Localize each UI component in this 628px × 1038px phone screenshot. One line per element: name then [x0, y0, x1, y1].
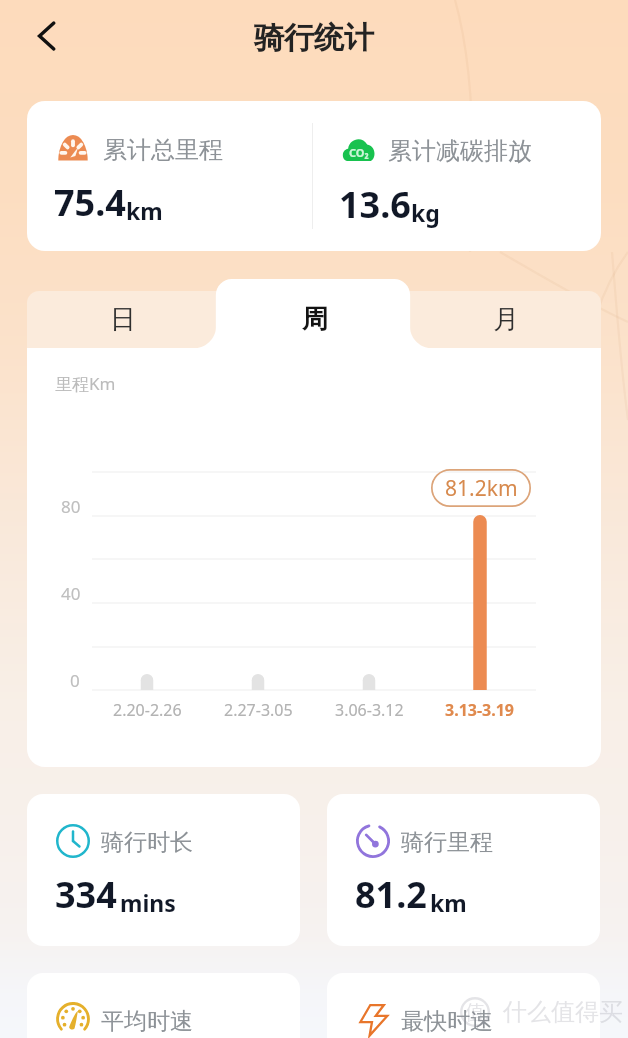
staticText: 81.2km [445, 474, 518, 503]
staticText: 80 [61, 495, 81, 518]
staticText: 骑行统计 [254, 19, 374, 57]
button[interactable]: 骑行时长 [27, 794, 300, 946]
button[interactable]: 周 [219, 291, 410, 348]
button[interactable]: Back [24, 13, 70, 59]
staticText: 什么值得买 [503, 997, 623, 1027]
staticText: 累计总里程 [103, 135, 223, 165]
staticText: 骑行里程 [401, 828, 493, 857]
staticText: 81.2 [355, 870, 427, 919]
staticText: 2.20-2.26 [113, 699, 182, 721]
staticText: 里程Km [55, 372, 116, 395]
staticText: mins [120, 887, 176, 918]
staticText: 值 [465, 1000, 485, 1025]
staticText: kg [411, 197, 440, 228]
staticText: 平均时速 [101, 1007, 193, 1036]
staticText: 13.6 [339, 180, 411, 229]
button[interactable]: 月 [410, 291, 601, 348]
staticText: 累计减碳排放 [388, 136, 532, 166]
button[interactable]: 最快时速 [327, 973, 600, 1038]
button[interactable]: 平均时速 [27, 973, 300, 1038]
staticText: 75.4 [54, 178, 126, 227]
staticText: 最快时速 [401, 1007, 493, 1036]
staticText: 3.06-3.12 [335, 699, 404, 721]
staticText: km [126, 195, 163, 226]
staticText: 0 [70, 669, 80, 692]
staticText: 2.27-3.05 [224, 699, 293, 721]
staticText: CO₂ [349, 145, 369, 160]
button[interactable]: 骑行里程 [327, 794, 600, 946]
button[interactable]: 日 [27, 291, 219, 348]
staticText: 周 [302, 303, 328, 336]
staticText: 月 [493, 303, 519, 336]
staticText: 日 [110, 303, 136, 336]
staticText: 骑行时长 [101, 828, 193, 857]
staticText: 334 [55, 870, 117, 919]
staticText: km [430, 887, 467, 918]
staticText: 3.13-3.19 [445, 699, 515, 721]
staticText: 40 [61, 582, 81, 605]
